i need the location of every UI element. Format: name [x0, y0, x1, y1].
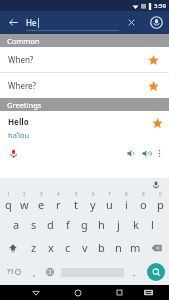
button[interactable]: l [144, 213, 161, 236]
staticText: h [98, 217, 105, 232]
staticText: e [38, 197, 45, 212]
button[interactable]: Back [0, 11, 26, 34]
staticText: y [90, 197, 96, 212]
button[interactable]: Voice input [150, 179, 161, 190]
button[interactable]: x [42, 236, 59, 259]
button[interactable]: He [26, 11, 119, 34]
staticText: i [125, 197, 128, 212]
staticText: s [31, 217, 37, 232]
staticText: u [106, 197, 113, 212]
button[interactable]: 4 [50, 190, 67, 213]
button[interactable]: 2 [16, 190, 33, 213]
staticText: haˈlou [8, 130, 30, 140]
button[interactable]: n [110, 236, 127, 259]
staticText: n [115, 240, 122, 255]
button[interactable]: Favorite [149, 115, 165, 131]
button[interactable]: 7 [101, 190, 118, 213]
staticText: , [33, 266, 36, 278]
staticText: j [117, 217, 120, 232]
staticText: c [65, 240, 71, 255]
staticText: He [26, 17, 37, 28]
button[interactable]: v [76, 236, 93, 259]
button[interactable]: Play [139, 146, 154, 161]
button[interactable]: b [93, 236, 110, 259]
button[interactable]: d [42, 213, 59, 236]
button[interactable]: Search [142, 259, 169, 285]
staticText: 0 [159, 191, 162, 197]
button[interactable]: m [127, 236, 144, 259]
staticText: 9 [142, 191, 145, 197]
staticText: r [56, 197, 61, 212]
button[interactable]: Space [57, 259, 127, 285]
button[interactable]: a [8, 213, 25, 236]
staticText: Greetings [7, 100, 42, 110]
button[interactable]: k [127, 213, 144, 236]
staticText: m [130, 240, 141, 255]
button[interactable]: 1 [0, 190, 16, 213]
staticText: o [140, 197, 147, 212]
staticText: p [157, 197, 164, 212]
button[interactable]: Clear [119, 11, 143, 34]
button[interactable]: 8 [118, 190, 135, 213]
button[interactable]: Favorite [145, 78, 161, 94]
staticText: 5 [75, 191, 78, 197]
staticText: f [66, 217, 70, 232]
button[interactable]: Where? [0, 73, 169, 98]
staticText: . [133, 266, 136, 278]
staticText: g [81, 217, 88, 232]
staticText: 6 [92, 191, 95, 197]
button[interactable]: Back [21, 285, 50, 300]
staticText: a [13, 217, 20, 232]
staticText: Hello [8, 116, 29, 127]
staticText: 1 [7, 191, 10, 197]
staticText: x [48, 240, 54, 255]
staticText: When? [8, 54, 34, 65]
staticText: b [98, 240, 105, 255]
staticText: k [133, 217, 139, 232]
button[interactable]: Switch keyboard [134, 285, 163, 300]
staticText: 8 [125, 191, 128, 197]
button[interactable]: 5 [67, 190, 84, 213]
button[interactable]: g [76, 213, 93, 236]
button[interactable]: j [110, 213, 127, 236]
button[interactable]: 9 [135, 190, 152, 213]
staticText: ?1 [7, 267, 15, 277]
button[interactable]: Home [63, 285, 92, 300]
staticText: 3 [40, 191, 43, 197]
button[interactable]: c [59, 236, 76, 259]
button[interactable]: Backspace [144, 236, 169, 259]
button[interactable]: Symbols [0, 259, 27, 285]
button[interactable]: 0 [152, 190, 169, 213]
button[interactable]: , [27, 259, 42, 285]
button[interactable]: s [25, 213, 42, 236]
staticText: d [47, 217, 54, 232]
button[interactable]: . [127, 259, 142, 285]
staticText: v [82, 240, 88, 255]
button[interactable]: Record pronunciation [6, 146, 20, 160]
staticText: 4 [57, 191, 60, 197]
staticText: l [151, 217, 154, 232]
staticText: z [31, 240, 37, 255]
button[interactable]: Shift [0, 236, 25, 259]
button[interactable]: h [93, 213, 110, 236]
button[interactable]: When? [0, 47, 169, 72]
button[interactable]: More options [154, 148, 165, 159]
button[interactable]: f [59, 213, 76, 236]
staticText: 2 [23, 191, 26, 197]
staticText: 7 [108, 191, 111, 197]
staticText: w [20, 197, 29, 212]
button[interactable]: Change language [42, 259, 57, 285]
button[interactable]: Favorite [145, 52, 161, 68]
staticText: Common [7, 36, 40, 46]
button[interactable]: Play slowly [124, 146, 139, 161]
staticText: Where? [8, 80, 37, 91]
staticText: t [74, 197, 78, 212]
button[interactable]: Hello [0, 111, 169, 144]
staticText: q [5, 197, 12, 212]
button[interactable]: z [25, 236, 42, 259]
button[interactable]: 3 [33, 190, 50, 213]
staticText: 3:59 [154, 2, 166, 10]
button[interactable]: 6 [84, 190, 101, 213]
button[interactable]: Recent apps [105, 285, 134, 300]
button[interactable]: Voice search [143, 11, 169, 34]
